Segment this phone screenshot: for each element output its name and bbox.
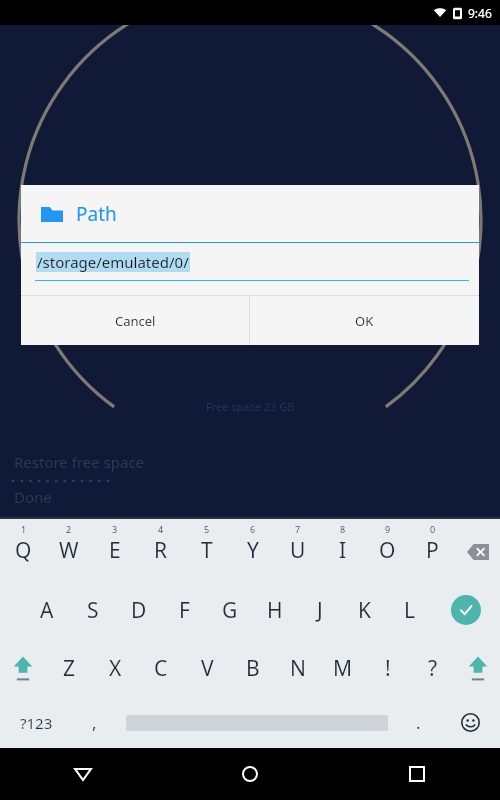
button[interactable]: 5	[184, 523, 230, 581]
button[interactable]: 2	[46, 523, 92, 581]
staticText: Cancel	[115, 312, 156, 330]
staticText: 8	[340, 523, 346, 535]
button[interactable]: H	[252, 581, 297, 639]
button[interactable]: Z	[46, 639, 92, 697]
button[interactable]: ,	[72, 697, 117, 748]
staticText: D	[131, 596, 147, 625]
staticText: 9	[385, 523, 391, 535]
staticText: 9:46	[468, 5, 492, 21]
staticText: 4	[158, 523, 164, 535]
button[interactable]: Recents	[333, 748, 500, 800]
button[interactable]: X	[92, 639, 138, 697]
staticText: Path	[76, 201, 117, 227]
button[interactable]: Cancel	[21, 296, 249, 345]
staticText: R	[154, 536, 168, 565]
button[interactable]: 7	[275, 523, 320, 581]
staticText: V	[201, 654, 214, 683]
button[interactable]: V	[184, 639, 230, 697]
button[interactable]: OK	[250, 296, 479, 345]
staticText: U	[290, 536, 306, 565]
button[interactable]: Space	[117, 697, 396, 748]
staticText: P	[426, 536, 439, 565]
button[interactable]: M	[320, 639, 365, 697]
staticText: 7	[295, 523, 301, 535]
staticText: /storage/emulated/0/	[37, 252, 189, 272]
button[interactable]: 8	[320, 523, 365, 581]
staticText: O	[379, 536, 396, 565]
staticText: Free space 23 GB	[206, 399, 295, 414]
button[interactable]: ?123	[0, 697, 72, 748]
button[interactable]: D	[116, 581, 162, 639]
staticText: M	[333, 654, 353, 683]
staticText: I	[339, 536, 347, 565]
staticText: F	[179, 596, 190, 625]
staticText: L	[404, 596, 416, 625]
button[interactable]: Enter	[432, 581, 500, 639]
staticText: ?	[428, 654, 438, 683]
staticText: 1	[21, 523, 27, 535]
button[interactable]: S	[70, 581, 116, 639]
button[interactable]: N	[275, 639, 320, 697]
button[interactable]: Home	[166, 748, 333, 800]
button[interactable]: Emoji	[441, 697, 500, 748]
staticText: T	[201, 536, 213, 565]
staticText: Q	[15, 536, 32, 565]
button[interactable]: 4	[138, 523, 184, 581]
button[interactable]: Restore free space	[14, 452, 145, 472]
button[interactable]: F	[162, 581, 207, 639]
button[interactable]: !	[365, 639, 410, 697]
staticText: .	[416, 711, 421, 734]
staticText: 5	[204, 523, 210, 535]
staticText: C	[154, 654, 168, 683]
staticText: J	[317, 596, 323, 625]
staticText: 2	[66, 523, 72, 535]
button[interactable]: Shift	[455, 639, 500, 697]
button[interactable]: Backspace	[455, 523, 500, 581]
staticText: B	[246, 654, 260, 683]
button[interactable]: A	[24, 581, 70, 639]
button[interactable]: 0	[410, 523, 455, 581]
button[interactable]: G	[207, 581, 252, 639]
button[interactable]: Done	[14, 487, 52, 507]
button[interactable]: 3	[92, 523, 138, 581]
staticText: ,	[92, 711, 97, 734]
staticText: W	[59, 536, 79, 565]
staticText: ?123	[20, 713, 53, 733]
staticText: H	[267, 596, 283, 625]
button[interactable]: K	[342, 581, 387, 639]
staticText: N	[290, 654, 306, 683]
staticText: 3	[112, 523, 118, 535]
staticText: S	[87, 596, 99, 625]
button[interactable]: Shift	[0, 639, 46, 697]
staticText: !	[385, 654, 391, 683]
button[interactable]: ?	[410, 639, 455, 697]
button[interactable]: L	[387, 581, 432, 639]
staticText: OK	[355, 312, 374, 330]
staticText: Y	[247, 536, 259, 565]
button[interactable]: 1	[0, 523, 46, 581]
staticText: G	[222, 596, 238, 625]
staticText: X	[109, 654, 122, 683]
button[interactable]: /storage/emulated/0/	[36, 243, 467, 280]
button[interactable]: Back	[0, 748, 166, 800]
button[interactable]: .	[396, 697, 441, 748]
staticText: 6	[250, 523, 256, 535]
staticText: K	[358, 596, 371, 625]
staticText: 0	[430, 523, 436, 535]
button[interactable]: 6	[230, 523, 275, 581]
button[interactable]: 9	[365, 523, 410, 581]
staticText: Z	[63, 654, 76, 683]
button[interactable]: B	[230, 639, 275, 697]
staticText: A	[40, 596, 54, 625]
button[interactable]: J	[297, 581, 342, 639]
button[interactable]: C	[138, 639, 184, 697]
staticText: E	[109, 536, 121, 565]
